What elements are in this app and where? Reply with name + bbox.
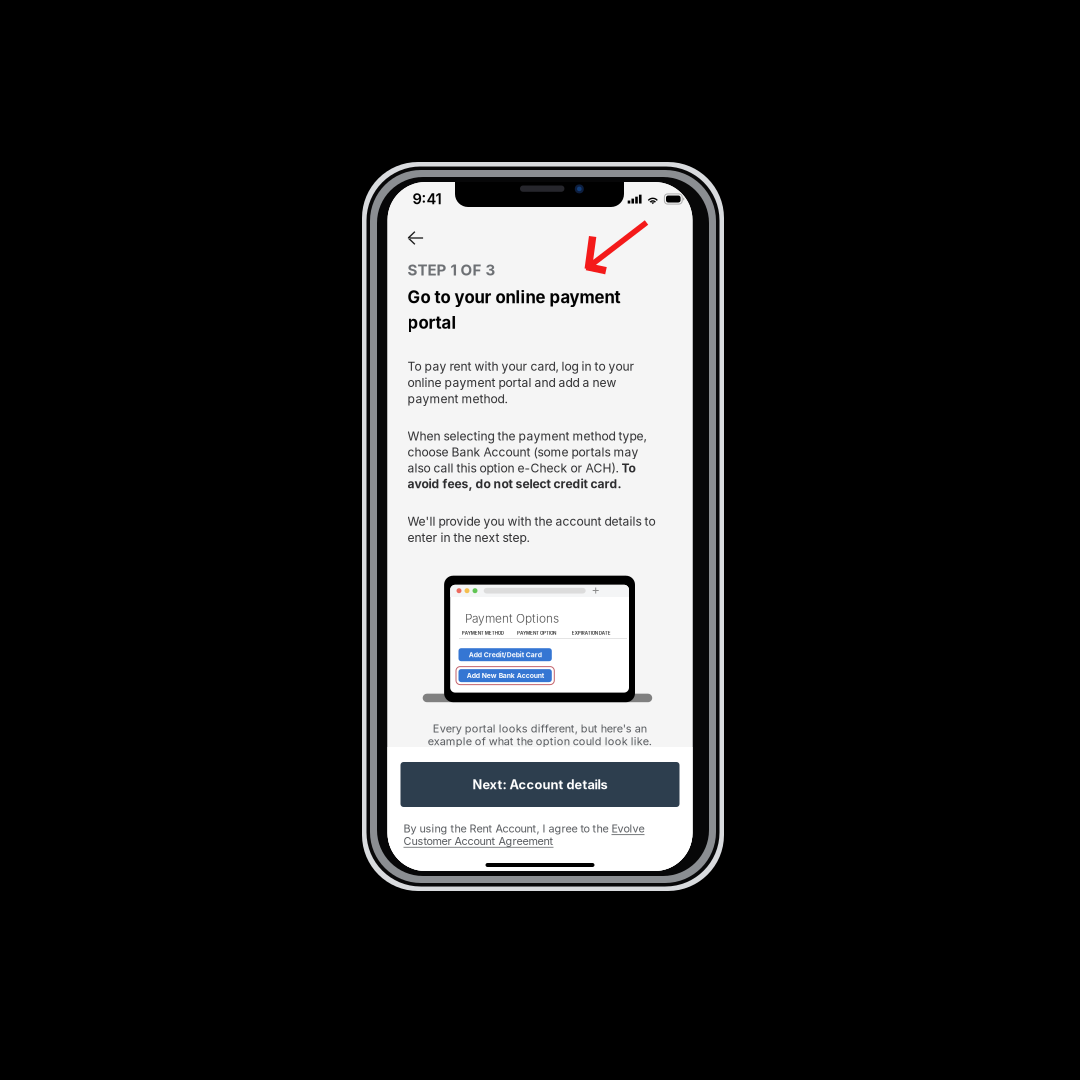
staticText: When selecting the payment method type, … [407, 429, 646, 491]
staticText: EXPIRATION DATE [572, 630, 611, 636]
button[interactable]: By using the Rent Account, I agree to th… [403, 822, 655, 848]
staticText: Every portal looks different, but here's… [427, 722, 651, 748]
staticText: STEP 1 OF 3 [407, 261, 495, 279]
button[interactable]: Back [387, 221, 439, 255]
staticText: Add New Bank Account [467, 671, 544, 680]
staticText: PAYMENT OPTION [517, 630, 556, 636]
button[interactable]: Next: Account details [400, 762, 679, 807]
button[interactable]: Add New Bank Account [456, 667, 554, 685]
staticText: PAYMENT METHOD [462, 630, 504, 636]
staticText: We'll provide you with the account detai… [407, 514, 655, 545]
button[interactable]: Add Credit/Debit Card [458, 648, 552, 661]
staticText: Add Credit/Debit Card [469, 651, 542, 659]
staticText: By using the Rent Account, I agree to th… [403, 822, 644, 848]
staticText: To pay rent with your card, log in to yo… [407, 359, 634, 406]
staticText: Payment Options [465, 611, 559, 626]
staticText: Next: Account details [472, 777, 607, 792]
staticText: 9:41 [412, 190, 441, 208]
staticText: Go to your online payment portal [407, 287, 620, 333]
